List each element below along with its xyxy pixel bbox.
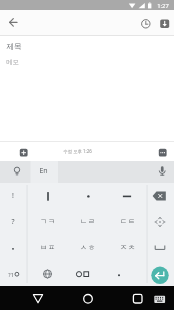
staticText: ?	[11, 217, 15, 227]
staticText: ㅈㅊ	[120, 243, 136, 252]
staticText: 메모	[6, 58, 19, 66]
button[interactable]	[6, 161, 28, 183]
staticText: ㅂㅍ	[40, 243, 56, 252]
staticText: ㄱㅋ	[40, 217, 56, 226]
button[interactable]	[152, 161, 174, 183]
button[interactable]	[156, 13, 174, 34]
button[interactable]	[28, 183, 68, 209]
button[interactable]: ㅂㅍ	[31, 241, 65, 254]
button[interactable]	[20, 287, 56, 309]
button[interactable]	[108, 183, 148, 209]
button[interactable]	[108, 209, 148, 235]
button[interactable]	[147, 235, 174, 261]
staticText: ?1	[8, 271, 14, 278]
button[interactable]	[28, 235, 68, 261]
button[interactable]: ㄷㅌ	[111, 215, 145, 228]
button[interactable]	[147, 260, 174, 286]
staticText: ㄷㅌ	[120, 217, 136, 226]
staticText: 수정 오후 1:26	[63, 148, 92, 154]
button[interactable]	[0, 235, 28, 261]
button[interactable]	[68, 260, 108, 286]
button[interactable]	[0, 38, 174, 56]
button[interactable]	[28, 209, 68, 235]
button[interactable]	[154, 144, 174, 161]
button[interactable]: En	[31, 165, 55, 177]
button[interactable]	[28, 260, 68, 286]
button[interactable]	[68, 235, 108, 261]
button[interactable]: ㄱㅋ	[31, 215, 65, 228]
button[interactable]	[68, 183, 108, 209]
button[interactable]	[108, 235, 148, 261]
button[interactable]: ㅅㅎ	[71, 241, 105, 254]
button[interactable]	[70, 287, 106, 309]
staticText: 1:27	[157, 2, 169, 10]
button[interactable]	[120, 287, 152, 309]
button[interactable]	[0, 183, 28, 209]
button[interactable]: !	[6, 190, 20, 202]
button[interactable]	[152, 287, 174, 309]
button[interactable]	[15, 144, 33, 161]
button[interactable]	[0, 209, 28, 235]
staticText: !	[12, 191, 14, 201]
button[interactable]	[147, 209, 174, 235]
button[interactable]	[147, 183, 174, 209]
staticText: En	[39, 166, 48, 176]
button[interactable]	[68, 209, 108, 235]
staticText: ㄴㄹ	[80, 217, 96, 226]
button[interactable]: ㅈㅊ	[111, 241, 145, 254]
button[interactable]	[138, 13, 154, 34]
staticText: 제목	[6, 42, 22, 52]
button[interactable]	[0, 260, 28, 286]
button[interactable]: ?	[6, 216, 20, 228]
button[interactable]	[4, 12, 24, 34]
button[interactable]: ㄴㄹ	[71, 215, 105, 228]
button[interactable]	[108, 260, 148, 286]
staticText: ㅅㅎ	[80, 243, 96, 252]
